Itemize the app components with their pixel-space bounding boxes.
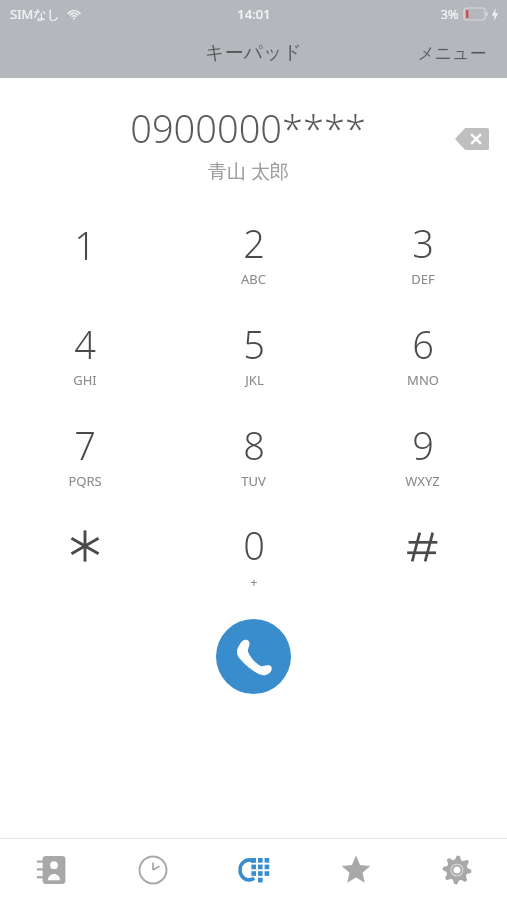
staticText: 5 bbox=[243, 318, 265, 370]
button[interactable]: Delete bbox=[449, 116, 495, 162]
staticText: 9 bbox=[412, 419, 434, 471]
button[interactable]: メニュー bbox=[397, 33, 507, 74]
staticText: 青山 太郎 bbox=[208, 158, 289, 184]
button[interactable]: 8 bbox=[169, 405, 338, 506]
button[interactable]: Recents bbox=[102, 839, 204, 900]
button[interactable]: 5 bbox=[169, 304, 338, 405]
button[interactable]: Favorites bbox=[305, 839, 406, 900]
staticText: DEF bbox=[411, 270, 435, 288]
staticText: WXYZ bbox=[405, 472, 440, 490]
staticText: PQRS bbox=[68, 472, 102, 490]
button[interactable]: 7 bbox=[0, 405, 169, 506]
staticText: 2 bbox=[243, 217, 265, 269]
button[interactable]: 3 bbox=[338, 203, 507, 304]
staticText: JKL bbox=[245, 371, 264, 389]
button[interactable]: 4 bbox=[0, 304, 169, 405]
staticText: 0900000**** bbox=[130, 102, 366, 154]
staticText: 3% bbox=[440, 5, 459, 23]
staticText: MNO bbox=[407, 371, 439, 389]
staticText: GHI bbox=[73, 371, 97, 389]
staticText: 6 bbox=[412, 318, 434, 370]
button[interactable] bbox=[0, 506, 169, 607]
staticText: 1 bbox=[74, 219, 96, 271]
button[interactable] bbox=[338, 506, 507, 607]
staticText: キーパッド bbox=[205, 41, 302, 65]
button[interactable]: Call bbox=[216, 619, 291, 694]
staticText: メニュー bbox=[417, 43, 487, 64]
staticText: 4 bbox=[74, 318, 96, 370]
button[interactable]: Keypad bbox=[204, 839, 305, 900]
staticText: 7 bbox=[74, 419, 96, 471]
staticText: 8 bbox=[243, 419, 265, 471]
button[interactable]: 9 bbox=[338, 405, 507, 506]
staticText: ABC bbox=[241, 270, 266, 288]
button[interactable]: 0 bbox=[169, 506, 338, 607]
staticText: + bbox=[250, 573, 258, 591]
staticText: SIMなし bbox=[10, 5, 60, 23]
button[interactable]: Contacts bbox=[0, 839, 102, 900]
button[interactable]: 2 bbox=[169, 203, 338, 304]
button[interactable]: 6 bbox=[338, 304, 507, 405]
button[interactable]: Settings bbox=[406, 839, 507, 900]
staticText: 0 bbox=[243, 519, 265, 571]
button[interactable]: 1 bbox=[0, 203, 169, 304]
staticText: 14:01 bbox=[237, 5, 271, 23]
staticText: TUV bbox=[241, 472, 266, 490]
staticText: 3 bbox=[412, 217, 434, 269]
